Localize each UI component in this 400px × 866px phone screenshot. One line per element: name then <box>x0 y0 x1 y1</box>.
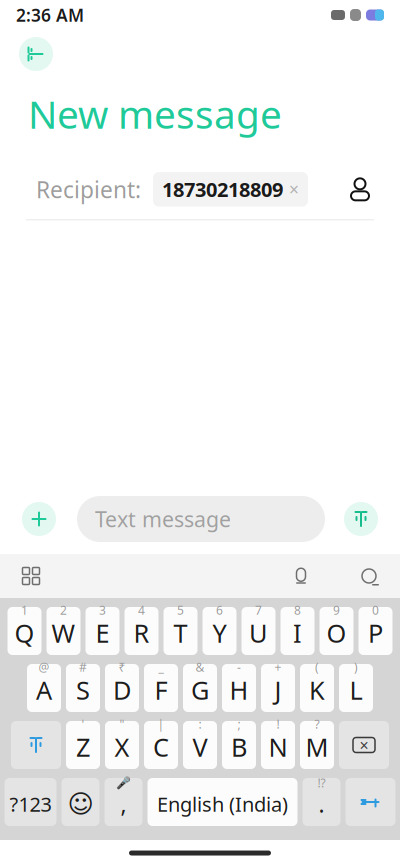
staticText: D <box>113 673 131 707</box>
staticText: C <box>153 730 169 764</box>
staticText: - <box>237 659 241 675</box>
button[interactable]: 🎤 <box>104 778 142 826</box>
button[interactable]: _ <box>144 664 178 712</box>
staticText: ) <box>354 659 358 675</box>
staticText: ' <box>81 716 84 732</box>
staticText: New message <box>28 88 282 139</box>
staticText: J <box>274 673 281 707</box>
button[interactable]: 3 <box>85 607 119 655</box>
button[interactable]: Send <box>339 497 383 541</box>
button[interactable]: ? <box>300 721 334 769</box>
button[interactable]: Add attachment <box>17 497 61 541</box>
button[interactable]: | <box>144 721 178 769</box>
staticText: F <box>154 673 167 707</box>
staticText: M <box>305 730 328 764</box>
button[interactable]: Backspace <box>339 721 389 769</box>
staticText: " <box>119 716 124 732</box>
staticText: G <box>191 673 209 707</box>
button[interactable]: Text message <box>77 496 325 542</box>
button[interactable]: 1 <box>7 607 41 655</box>
button[interactable]: & <box>183 664 217 712</box>
staticText: × <box>359 734 368 756</box>
staticText: 6 <box>216 602 223 618</box>
staticText: ? <box>314 716 319 732</box>
staticText: ☺ <box>67 790 93 818</box>
button[interactable]: 9 <box>319 607 353 655</box>
button[interactable]: 7 <box>241 607 275 655</box>
button[interactable]: ) <box>339 664 373 712</box>
button[interactable]: 18730218809 <box>153 172 308 207</box>
staticText: 0 <box>372 602 379 618</box>
staticText: Z <box>76 730 90 764</box>
button[interactable]: 8 <box>280 607 314 655</box>
staticText: ! <box>276 716 279 732</box>
staticText: 7 <box>255 602 262 618</box>
button[interactable]: Choose contact <box>340 169 380 209</box>
button[interactable]: ( <box>300 664 334 712</box>
button[interactable]: @ <box>27 664 61 712</box>
button[interactable]: ?123 <box>4 778 56 826</box>
staticText: _ <box>158 659 163 675</box>
button[interactable]: ☺ <box>61 778 99 826</box>
button[interactable]: 5 <box>163 607 197 655</box>
staticText: & <box>195 659 204 675</box>
button[interactable]: Search <box>352 559 386 593</box>
staticText: 🎤 <box>116 776 131 790</box>
button[interactable]: - <box>222 664 256 712</box>
staticText: K <box>309 673 325 707</box>
button[interactable]: !? <box>302 778 340 826</box>
button[interactable]: Back <box>14 32 58 76</box>
button[interactable]: 2 <box>46 607 80 655</box>
staticText: 2:36 AM <box>16 3 84 26</box>
button[interactable]: ; <box>222 721 256 769</box>
staticText: Text message <box>95 505 231 533</box>
button[interactable]: 6 <box>202 607 236 655</box>
staticText: ?123 <box>9 791 51 817</box>
staticText: 5 <box>177 602 184 618</box>
staticText: R <box>133 616 149 650</box>
button[interactable]: English (India) <box>147 778 297 826</box>
staticText: P <box>368 616 383 650</box>
staticText: × <box>289 178 299 201</box>
button[interactable]: # <box>66 664 100 712</box>
staticText: Q <box>14 616 34 650</box>
staticText: 8 <box>294 602 301 618</box>
button[interactable]: Keyboard layouts <box>14 559 48 593</box>
staticText: ₹ <box>118 659 125 675</box>
staticText: + <box>274 659 281 675</box>
button[interactable]: ' <box>66 721 100 769</box>
staticText: # <box>79 659 87 675</box>
staticText: : <box>198 716 201 732</box>
staticText: H <box>229 673 248 707</box>
button[interactable]: + <box>261 664 295 712</box>
staticText: X <box>114 730 129 764</box>
button[interactable]: " <box>105 721 139 769</box>
staticText: T <box>173 616 187 650</box>
staticText: B <box>231 730 247 764</box>
staticText: W <box>51 616 75 650</box>
staticText: English (India) <box>157 791 288 817</box>
staticText: !? <box>317 775 325 791</box>
staticText: V <box>192 730 207 764</box>
staticText: E <box>95 616 109 650</box>
staticText: ( <box>315 659 319 675</box>
staticText: , <box>120 789 126 819</box>
staticText: 2 <box>60 602 67 618</box>
staticText: | <box>157 716 164 732</box>
button[interactable]: Return <box>345 778 395 826</box>
staticText: 4 <box>138 602 145 618</box>
staticText: Recipient: <box>36 174 141 204</box>
staticText: 18730218809 <box>162 176 283 203</box>
staticText: A <box>36 673 52 707</box>
button[interactable]: ! <box>261 721 295 769</box>
staticText: @ <box>38 659 49 675</box>
button[interactable]: 4 <box>124 607 158 655</box>
staticText: 9 <box>333 602 340 618</box>
staticText: . <box>318 789 324 819</box>
button[interactable]: Voice input <box>284 559 318 593</box>
button[interactable]: : <box>183 721 217 769</box>
button[interactable]: ₹ <box>105 664 139 712</box>
button[interactable]: 0 <box>358 607 392 655</box>
button[interactable]: Shift <box>11 721 61 769</box>
staticText: 3 <box>99 602 106 618</box>
